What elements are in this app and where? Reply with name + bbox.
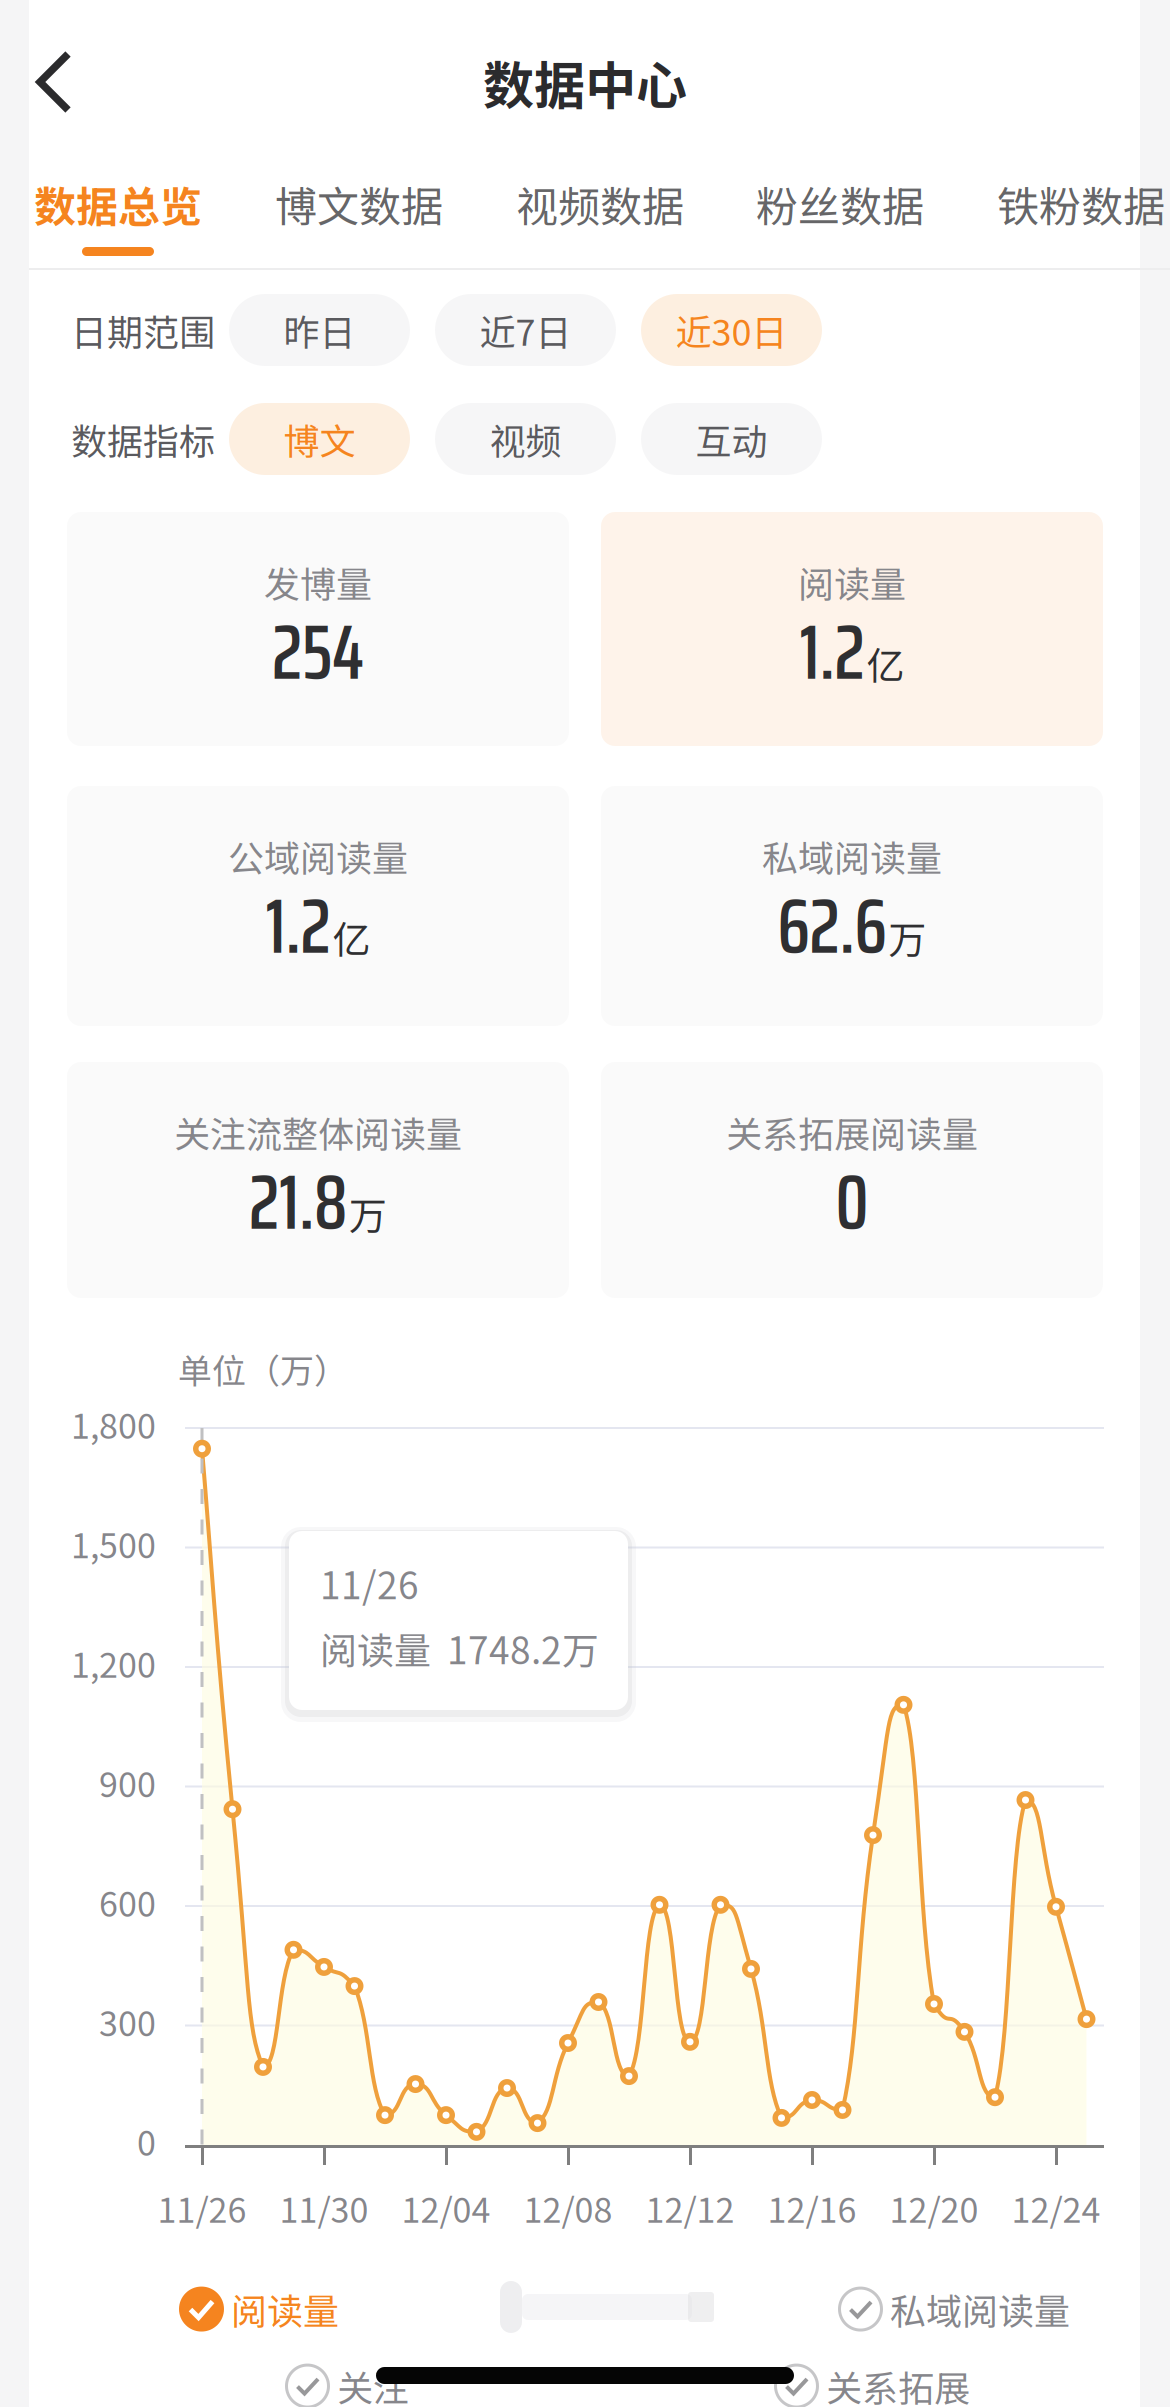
staticText: 阅读量 bbox=[231, 2283, 339, 2335]
button[interactable]: 近7日 bbox=[435, 294, 616, 366]
staticText: 万 bbox=[349, 1186, 387, 1241]
staticText: 亿 bbox=[866, 636, 904, 691]
staticText: 254 bbox=[272, 591, 364, 713]
button[interactable]: 关注流整体阅读量 bbox=[67, 1062, 569, 1298]
staticText: 关注 bbox=[337, 2360, 409, 2407]
button[interactable]: 关注 bbox=[285, 2360, 409, 2407]
staticText: 公域阅读量 bbox=[228, 830, 408, 882]
staticText: 铁粉数据 bbox=[997, 174, 1165, 234]
button[interactable]: 互动 bbox=[641, 403, 822, 475]
staticText: 昨日 bbox=[283, 304, 355, 356]
staticText: 11/30 bbox=[279, 2183, 368, 2233]
staticText: 12/20 bbox=[889, 2183, 978, 2233]
staticText: 0 bbox=[835, 1141, 868, 1263]
staticText: 万 bbox=[888, 910, 926, 965]
staticText: 粉丝数据 bbox=[756, 174, 924, 234]
staticText: 600 bbox=[99, 1877, 156, 1927]
staticText: 私域阅读量 bbox=[890, 2283, 1070, 2335]
staticText: 11/26 bbox=[157, 2183, 246, 2233]
button[interactable]: 视频 bbox=[435, 403, 616, 475]
staticText: 私域阅读量 bbox=[762, 830, 942, 882]
button[interactable]: 昨日 bbox=[229, 294, 410, 366]
staticText: 12/16 bbox=[767, 2183, 856, 2233]
button[interactable]: 公域阅读量 bbox=[67, 786, 569, 1026]
staticText: 12/04 bbox=[401, 2183, 490, 2233]
staticText: 1.2 bbox=[265, 865, 330, 987]
staticText: 12/08 bbox=[523, 2183, 612, 2233]
staticText: 62.6 bbox=[777, 865, 886, 987]
staticText: 1,200 bbox=[71, 1638, 156, 1688]
staticText: 12/24 bbox=[1011, 2183, 1100, 2233]
button[interactable]: 视频数据 bbox=[515, 178, 685, 230]
staticText: 300 bbox=[99, 1997, 156, 2046]
button[interactable]: 铁粉数据 bbox=[996, 178, 1166, 230]
staticText: 互动 bbox=[695, 413, 767, 465]
button[interactable]: 关系拓展阅读量 bbox=[601, 1062, 1103, 1298]
button[interactable]: 数据总览 bbox=[33, 178, 203, 256]
staticText: 视频 bbox=[489, 413, 561, 465]
staticText: 1,500 bbox=[71, 1519, 156, 1568]
button[interactable]: 发博量 bbox=[67, 512, 569, 746]
button[interactable]: 博文 bbox=[229, 403, 410, 475]
staticText: 数据总览 bbox=[34, 174, 202, 234]
staticText: 关系拓展 bbox=[826, 2360, 970, 2407]
button[interactable]: 私域阅读量 bbox=[601, 786, 1103, 1026]
button[interactable]: 博文数据 bbox=[274, 178, 444, 230]
button[interactable]: 近30日 bbox=[641, 294, 822, 366]
button[interactable]: 阅读量 bbox=[601, 512, 1103, 746]
button[interactable]: 阅读量 bbox=[179, 2283, 339, 2335]
staticText: 11/26 bbox=[320, 1556, 419, 1610]
staticText: 博文数据 bbox=[275, 174, 443, 234]
button[interactable]: 私域阅读量 bbox=[838, 2283, 1070, 2335]
staticText: 12/12 bbox=[645, 2183, 734, 2233]
staticText: 视频数据 bbox=[516, 174, 684, 234]
staticText: 1.2 bbox=[799, 591, 864, 713]
staticText: 21.8 bbox=[249, 1141, 347, 1263]
staticText: 阅读量 bbox=[798, 556, 906, 608]
staticText: 900 bbox=[99, 1758, 156, 1807]
staticText: 1,800 bbox=[71, 1399, 156, 1449]
button[interactable]: 粉丝数据 bbox=[755, 178, 925, 230]
button[interactable]: 关系拓展 bbox=[774, 2360, 970, 2407]
staticText: 关系拓展阅读量 bbox=[726, 1106, 978, 1158]
staticText: 数据中心 bbox=[483, 45, 687, 119]
staticText: 近7日 bbox=[479, 304, 571, 356]
staticText: 日期范围 bbox=[71, 304, 215, 356]
staticText: 博文 bbox=[283, 413, 355, 465]
staticText: 0 bbox=[137, 2116, 156, 2166]
staticText: 关注流整体阅读量 bbox=[174, 1106, 462, 1158]
staticText: 单位（万） bbox=[178, 1344, 348, 1393]
staticText: 阅读量 1748.2万 bbox=[320, 1621, 599, 1675]
staticText: 近30日 bbox=[675, 304, 787, 356]
button[interactable]: 返回 bbox=[14, 28, 124, 136]
staticText: 数据指标 bbox=[71, 413, 215, 465]
staticText: 发博量 bbox=[264, 556, 372, 608]
staticText: 亿 bbox=[332, 910, 370, 965]
